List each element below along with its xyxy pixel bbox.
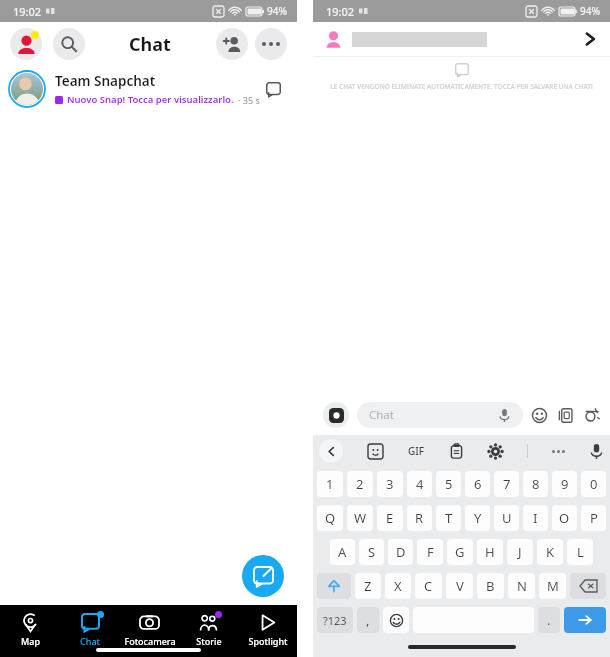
button[interactable]: Map <box>0 611 60 649</box>
button[interactable]: M <box>539 573 566 599</box>
button[interactable] <box>552 450 565 453</box>
button[interactable]: L <box>567 539 593 565</box>
button[interactable]: 5 <box>436 471 461 497</box>
button[interactable]: 0 <box>581 471 606 497</box>
button[interactable]: C <box>415 573 442 599</box>
button[interactable]: D <box>388 539 413 565</box>
button[interactable]: G <box>447 539 473 565</box>
button[interactable]: S <box>359 539 384 565</box>
staticText: R <box>415 509 424 527</box>
button[interactable]: K <box>537 539 563 565</box>
button[interactable]: Send chat <box>261 77 285 101</box>
staticText: N <box>517 577 527 595</box>
button[interactable]: Profile <box>10 28 42 60</box>
button[interactable]: Voice input <box>589 444 604 459</box>
button[interactable]: New chat <box>242 555 284 597</box>
button[interactable]: J <box>507 539 533 565</box>
button[interactable]: Back <box>319 439 343 463</box>
button[interactable]: Lenses <box>583 407 600 424</box>
button[interactable]: Sticker <box>368 444 383 459</box>
button[interactable]: Stickers <box>557 407 574 424</box>
button[interactable]: Spotlight <box>238 611 297 649</box>
button[interactable]: Chat <box>357 402 523 428</box>
button[interactable]: Emoji keyboard <box>383 607 409 633</box>
button[interactable]: R <box>407 505 432 531</box>
button[interactable]: Camera <box>323 402 349 428</box>
button[interactable]: Open conversation <box>313 22 610 56</box>
button[interactable]: , <box>357 607 379 633</box>
button[interactable]: ?123 <box>317 607 353 633</box>
button[interactable]: Fotocamera <box>120 611 179 649</box>
button[interactable]: 1 <box>317 471 343 497</box>
staticText: GIF <box>408 444 425 458</box>
button[interactable]: Chat <box>60 611 120 649</box>
button[interactable]: Open conversation <box>582 31 598 47</box>
staticText: G <box>455 543 465 561</box>
staticText: H <box>485 543 495 561</box>
button[interactable]: Settings <box>488 444 503 459</box>
staticText: 4 <box>416 475 424 493</box>
staticText: 19:02 <box>13 4 42 19</box>
button[interactable]: Clipboard <box>449 444 464 459</box>
staticText: S <box>368 543 376 561</box>
button[interactable]: More options <box>255 28 287 60</box>
staticText: Spotlight <box>248 635 288 647</box>
staticText: Q <box>325 509 336 527</box>
staticText: L <box>577 543 584 561</box>
button[interactable]: 8 <box>523 471 548 497</box>
button[interactable]: Shift <box>317 573 351 599</box>
button[interactable]: 9 <box>552 471 577 497</box>
staticText: X <box>394 577 402 595</box>
button[interactable]: Q <box>317 505 343 531</box>
staticText: T <box>445 509 453 527</box>
staticText: 5 <box>445 475 453 493</box>
staticText: K <box>546 543 555 561</box>
button[interactable]: A <box>330 539 355 565</box>
staticText: 3 <box>386 475 394 493</box>
button[interactable]: F <box>417 539 443 565</box>
button[interactable]: GIF <box>408 444 425 458</box>
staticText: Chat <box>80 635 100 647</box>
staticText: E <box>386 509 394 527</box>
button[interactable]: O <box>552 505 577 531</box>
staticText: W <box>354 509 367 527</box>
button[interactable]: 3 <box>377 471 403 497</box>
button[interactable]: 4 <box>407 471 432 497</box>
staticText: Z <box>364 577 372 595</box>
button[interactable]: H <box>477 539 503 565</box>
button[interactable]: V <box>446 573 473 599</box>
staticText: V <box>456 577 464 595</box>
staticText: M <box>547 577 559 595</box>
button[interactable]: I <box>523 505 548 531</box>
staticText: P <box>590 509 598 527</box>
staticText: D <box>396 543 406 561</box>
button[interactable]: . <box>538 607 560 633</box>
button[interactable]: E <box>377 505 403 531</box>
button[interactable]: 2 <box>347 471 373 497</box>
staticText: I <box>533 509 538 527</box>
staticText: Storie <box>196 635 222 647</box>
button[interactable]: Search <box>53 28 85 60</box>
button[interactable]: Z <box>355 573 381 599</box>
button[interactable]: P <box>581 505 606 531</box>
button[interactable]: 7 <box>494 471 519 497</box>
button[interactable]: B <box>477 573 504 599</box>
staticText: Y <box>474 509 482 527</box>
button[interactable]: T <box>436 505 461 531</box>
staticText: Chat <box>129 32 171 57</box>
button[interactable]: 6 <box>465 471 490 497</box>
button[interactable]: Storie <box>179 611 238 649</box>
button[interactable]: Emoji <box>531 407 548 424</box>
staticText: B <box>486 577 495 595</box>
button[interactable]: Team Snapchat <box>0 66 297 112</box>
button[interactable]: Add friend <box>216 28 248 60</box>
staticText: J <box>518 543 522 561</box>
button[interactable]: U <box>494 505 519 531</box>
button[interactable]: Backspace <box>570 573 606 599</box>
button[interactable]: Y <box>465 505 490 531</box>
button[interactable]: W <box>347 505 373 531</box>
button[interactable]: N <box>508 573 535 599</box>
button[interactable]: Send <box>564 607 606 633</box>
button[interactable]: X <box>385 573 411 599</box>
